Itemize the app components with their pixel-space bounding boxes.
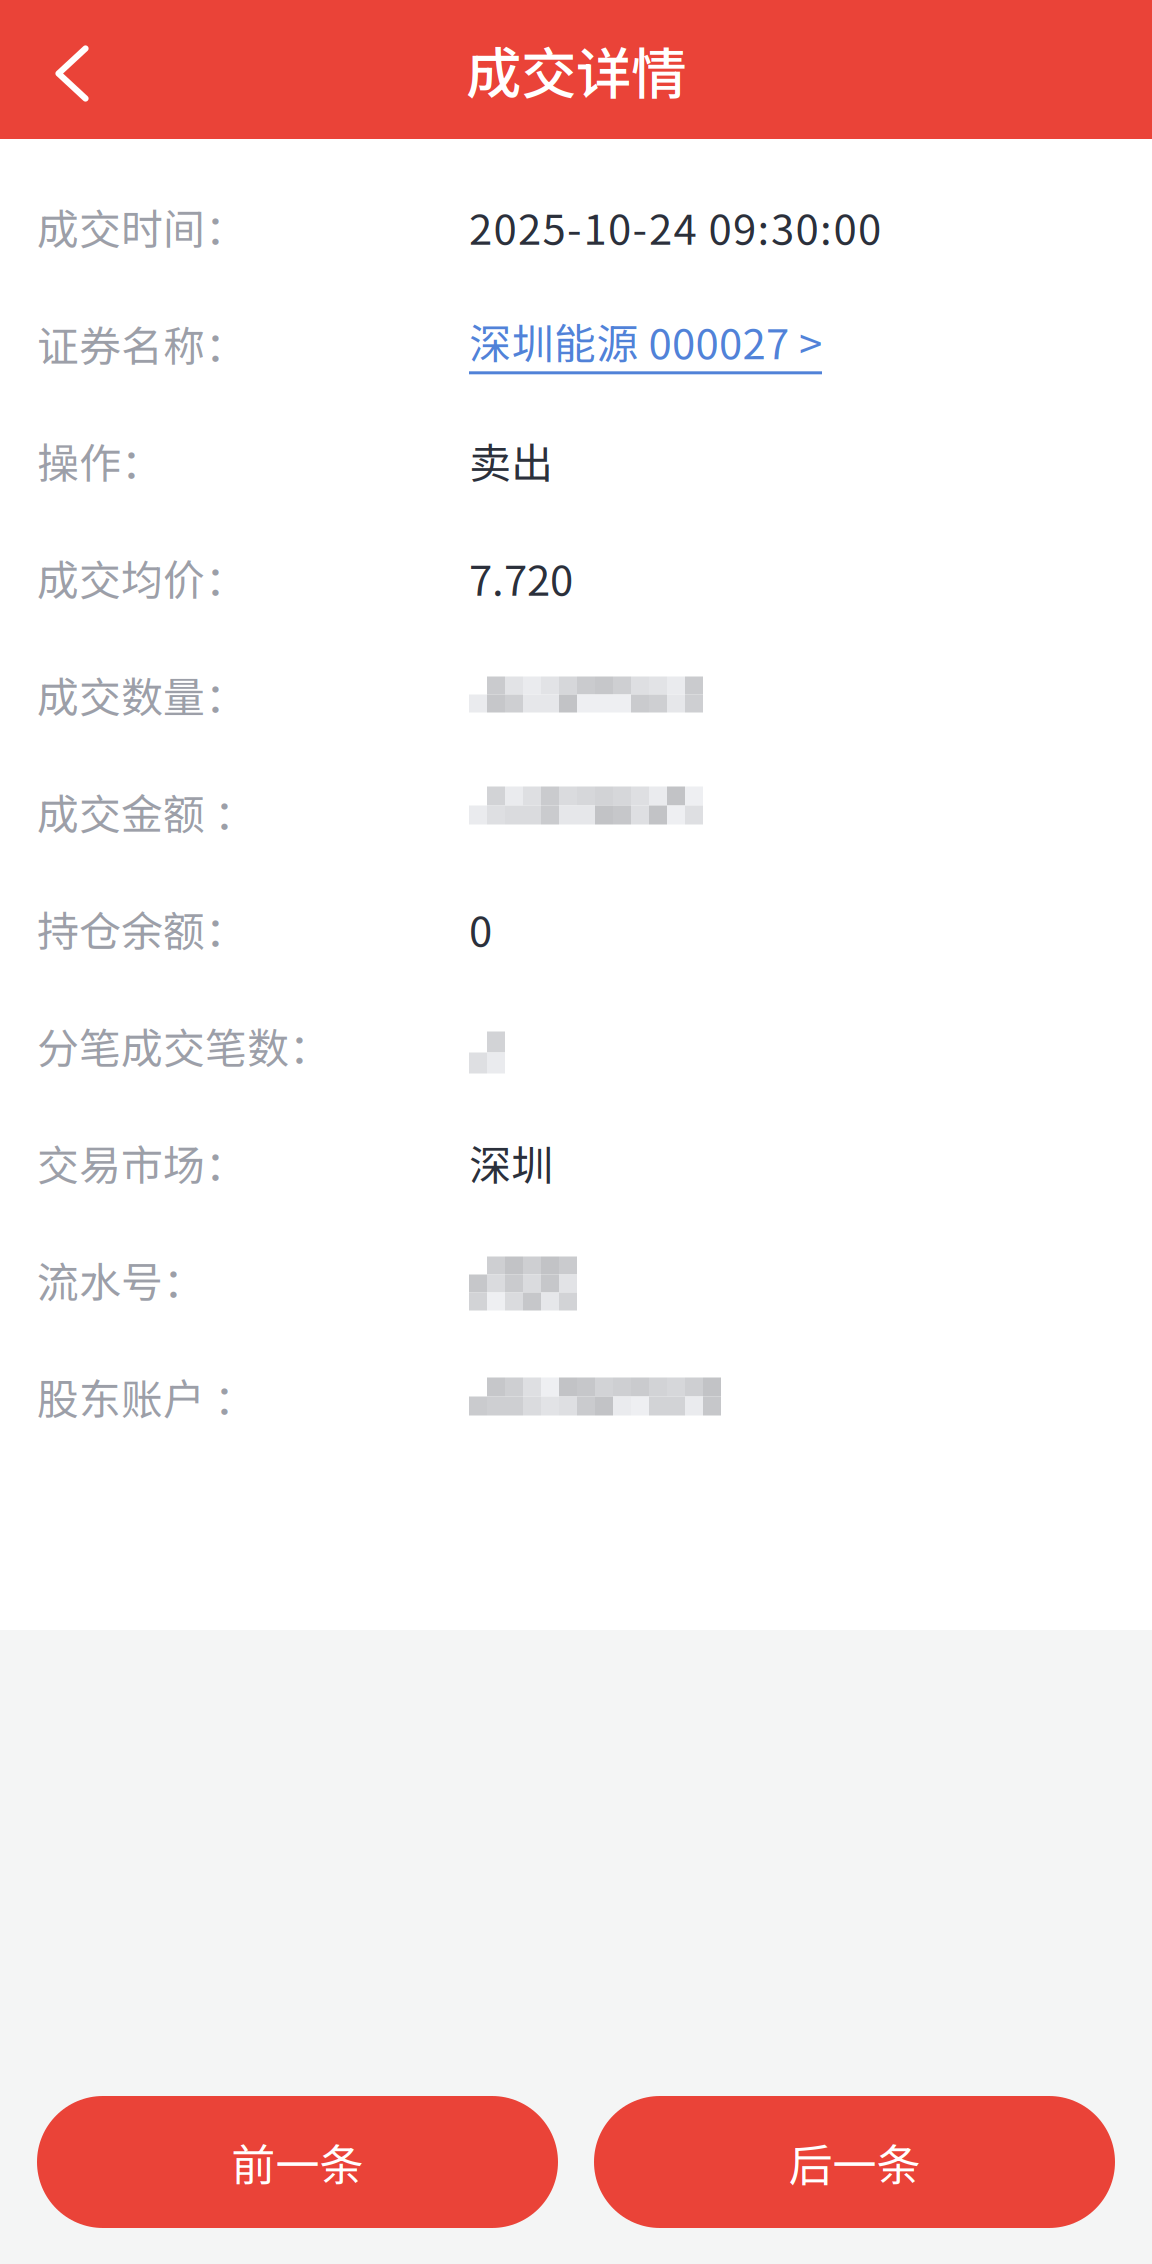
staticText: 分笔成交笔数：: [37, 1015, 331, 1076]
staticText: 0: [469, 898, 492, 959]
staticText: 交易市场：: [37, 1132, 247, 1193]
staticText: 2025-10-24 09:30:00: [469, 196, 881, 257]
staticText: 成交数量：: [37, 664, 247, 725]
button[interactable]: Back: [18, 14, 118, 124]
staticText: 成交详情: [466, 29, 686, 109]
staticText: 持仓余额：: [37, 898, 247, 959]
staticText: 7.720: [469, 547, 573, 608]
button[interactable]: 深圳能源 000027 >: [469, 311, 822, 376]
staticText: 成交金额 ：: [37, 781, 256, 842]
staticText: 股东账户 ：: [37, 1366, 256, 1427]
button[interactable]: 后一条: [594, 2096, 1115, 2228]
staticText: 深圳: [469, 1132, 553, 1193]
staticText: 操作：: [37, 430, 163, 491]
staticText: 后一条: [788, 2130, 920, 2194]
staticText: 成交均价：: [37, 547, 247, 608]
staticText: 证券名称：: [37, 313, 247, 374]
staticText: 卖出: [469, 430, 553, 491]
staticText: 流水号：: [37, 1249, 205, 1310]
staticText: 深圳能源 000027 >: [469, 311, 822, 371]
staticText: 前一条: [231, 2130, 363, 2194]
button[interactable]: 前一条: [37, 2096, 558, 2228]
staticText: 成交时间：: [37, 196, 247, 257]
